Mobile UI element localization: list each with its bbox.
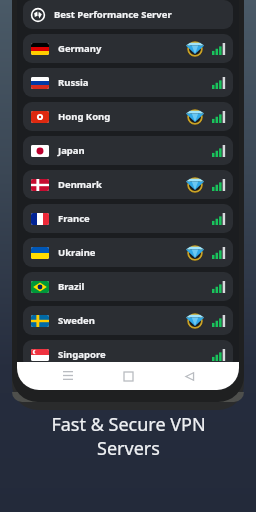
- button[interactable]: Germany: [23, 34, 233, 63]
- button[interactable]: France: [23, 204, 233, 233]
- staticText: Japan: [58, 144, 85, 157]
- button[interactable]: Russia: [23, 68, 233, 97]
- button[interactable]: Home: [118, 366, 138, 386]
- staticText: Fast & Secure VPN Servers: [51, 412, 206, 460]
- button[interactable]: Premium server: [187, 41, 203, 57]
- button[interactable]: Japan: [23, 136, 233, 165]
- button[interactable]: Singapore: [23, 340, 233, 369]
- button[interactable]: Premium server: [187, 245, 203, 261]
- staticText: Denmark: [58, 178, 102, 191]
- button[interactable]: Premium server: [187, 177, 203, 193]
- button[interactable]: Premium server: [187, 313, 203, 329]
- staticText: Russia: [58, 76, 89, 89]
- button[interactable]: Best Performance Server: [23, 0, 233, 29]
- staticText: Brazil: [58, 280, 85, 293]
- button[interactable]: Sweden: [23, 306, 233, 335]
- button[interactable]: Premium server: [187, 109, 203, 125]
- staticText: Ukraine: [58, 246, 96, 259]
- button[interactable]: Denmark: [23, 170, 233, 199]
- staticText: Best Performance Server: [54, 8, 172, 21]
- staticText: Singapore: [58, 348, 106, 361]
- staticText: Germany: [58, 42, 102, 55]
- staticText: Sweden: [58, 314, 95, 327]
- button[interactable]: Ukraine: [23, 238, 233, 267]
- button[interactable]: Hong Kong: [23, 102, 233, 131]
- button[interactable]: Back: [179, 366, 199, 386]
- staticText: France: [58, 212, 90, 225]
- button[interactable]: Brazil: [23, 272, 233, 301]
- staticText: Hong Kong: [58, 110, 111, 123]
- button[interactable]: Recents: [58, 366, 78, 386]
